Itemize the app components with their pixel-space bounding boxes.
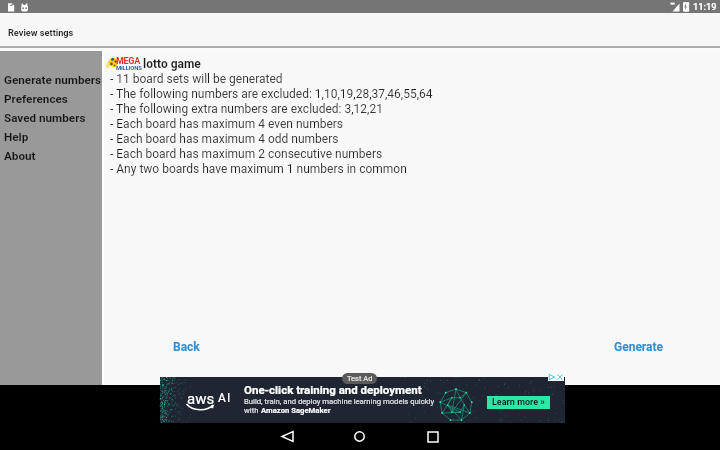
staticText: Amazon SageMaker <box>261 406 331 415</box>
staticText: Help <box>4 130 29 144</box>
button[interactable]: Learn more » <box>487 396 550 409</box>
staticText: aws <box>187 390 215 408</box>
staticText: Preferences <box>4 92 68 106</box>
staticText: MILLIONS <box>116 64 142 71</box>
staticText: Saved numbers <box>4 111 86 125</box>
staticText: Generate <box>614 340 664 354</box>
button[interactable]: Generate <box>614 340 664 354</box>
staticText: About <box>4 149 36 163</box>
staticText: AI <box>218 391 232 405</box>
button[interactable]: Back <box>173 340 200 354</box>
button[interactable]: Help <box>0 130 102 149</box>
staticText: - 11 board sets will be generated - The … <box>110 72 433 176</box>
button[interactable]: Recent apps <box>419 423 446 450</box>
staticText: lotto game <box>143 57 201 71</box>
staticText: MEGA <box>116 56 140 67</box>
staticText: Learn more » <box>492 397 545 408</box>
button[interactable]: Preferences <box>0 92 102 111</box>
button[interactable]: Ad choices <box>548 373 564 381</box>
button[interactable]: Back <box>274 423 301 450</box>
staticText: Test Ad <box>347 374 373 383</box>
staticText: 11:19 <box>693 1 717 12</box>
staticText: Review settings <box>8 27 74 38</box>
button[interactable]: Home <box>346 423 373 450</box>
button[interactable]: Saved numbers <box>0 111 102 130</box>
button[interactable]: About <box>0 149 102 168</box>
staticText: Build, train, and deploy machine learnin… <box>244 397 435 406</box>
staticText: Generate numbers <box>4 73 102 87</box>
staticText: with <box>244 406 261 415</box>
staticText: Back <box>173 340 200 354</box>
button[interactable]: Generate numbers <box>0 73 102 92</box>
staticText: One-click training and deployment <box>244 383 422 396</box>
